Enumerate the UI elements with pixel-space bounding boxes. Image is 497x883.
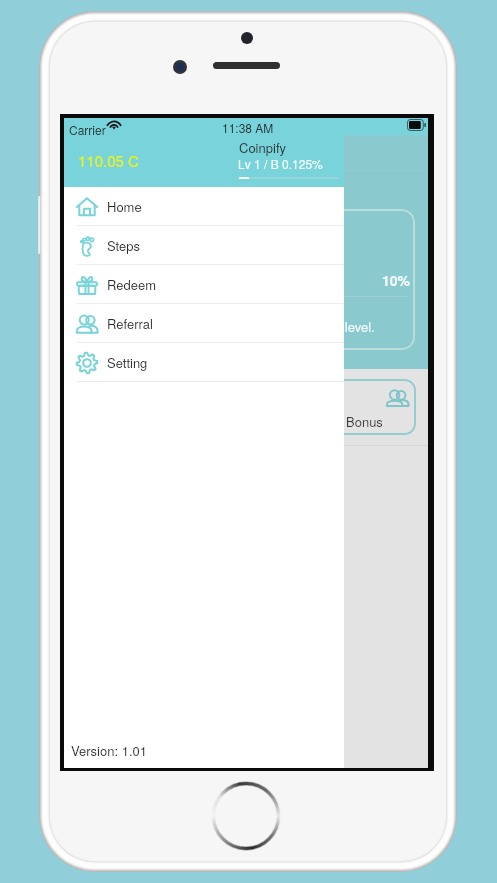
staticText: 11:38 AM — [222, 119, 274, 136]
button[interactable]: Setting — [64, 343, 344, 382]
staticText: 10% — [382, 270, 411, 290]
staticText: Steps — [107, 236, 140, 255]
staticText: Lv 1 / B 0.125% — [238, 155, 323, 172]
staticText: Home — [107, 197, 142, 216]
button[interactable]: Steps — [64, 226, 344, 265]
staticText: 110.05 C — [78, 150, 139, 171]
button[interactable]: Referral — [64, 304, 344, 343]
staticText: Bonus — [346, 412, 383, 431]
button[interactable]: Redeem — [64, 265, 344, 304]
staticText: Version: 1.01 — [71, 741, 147, 760]
staticText: Redeem — [107, 275, 156, 294]
staticText: Carrier — [69, 121, 106, 138]
staticText: Coinpify — [239, 138, 287, 157]
staticText: Setting — [107, 353, 148, 372]
staticText: Earn more coins as you level. — [205, 317, 375, 336]
button[interactable]: Home — [64, 187, 344, 226]
button[interactable]: Bonus — [80, 379, 416, 435]
staticText: Referral — [107, 314, 153, 333]
